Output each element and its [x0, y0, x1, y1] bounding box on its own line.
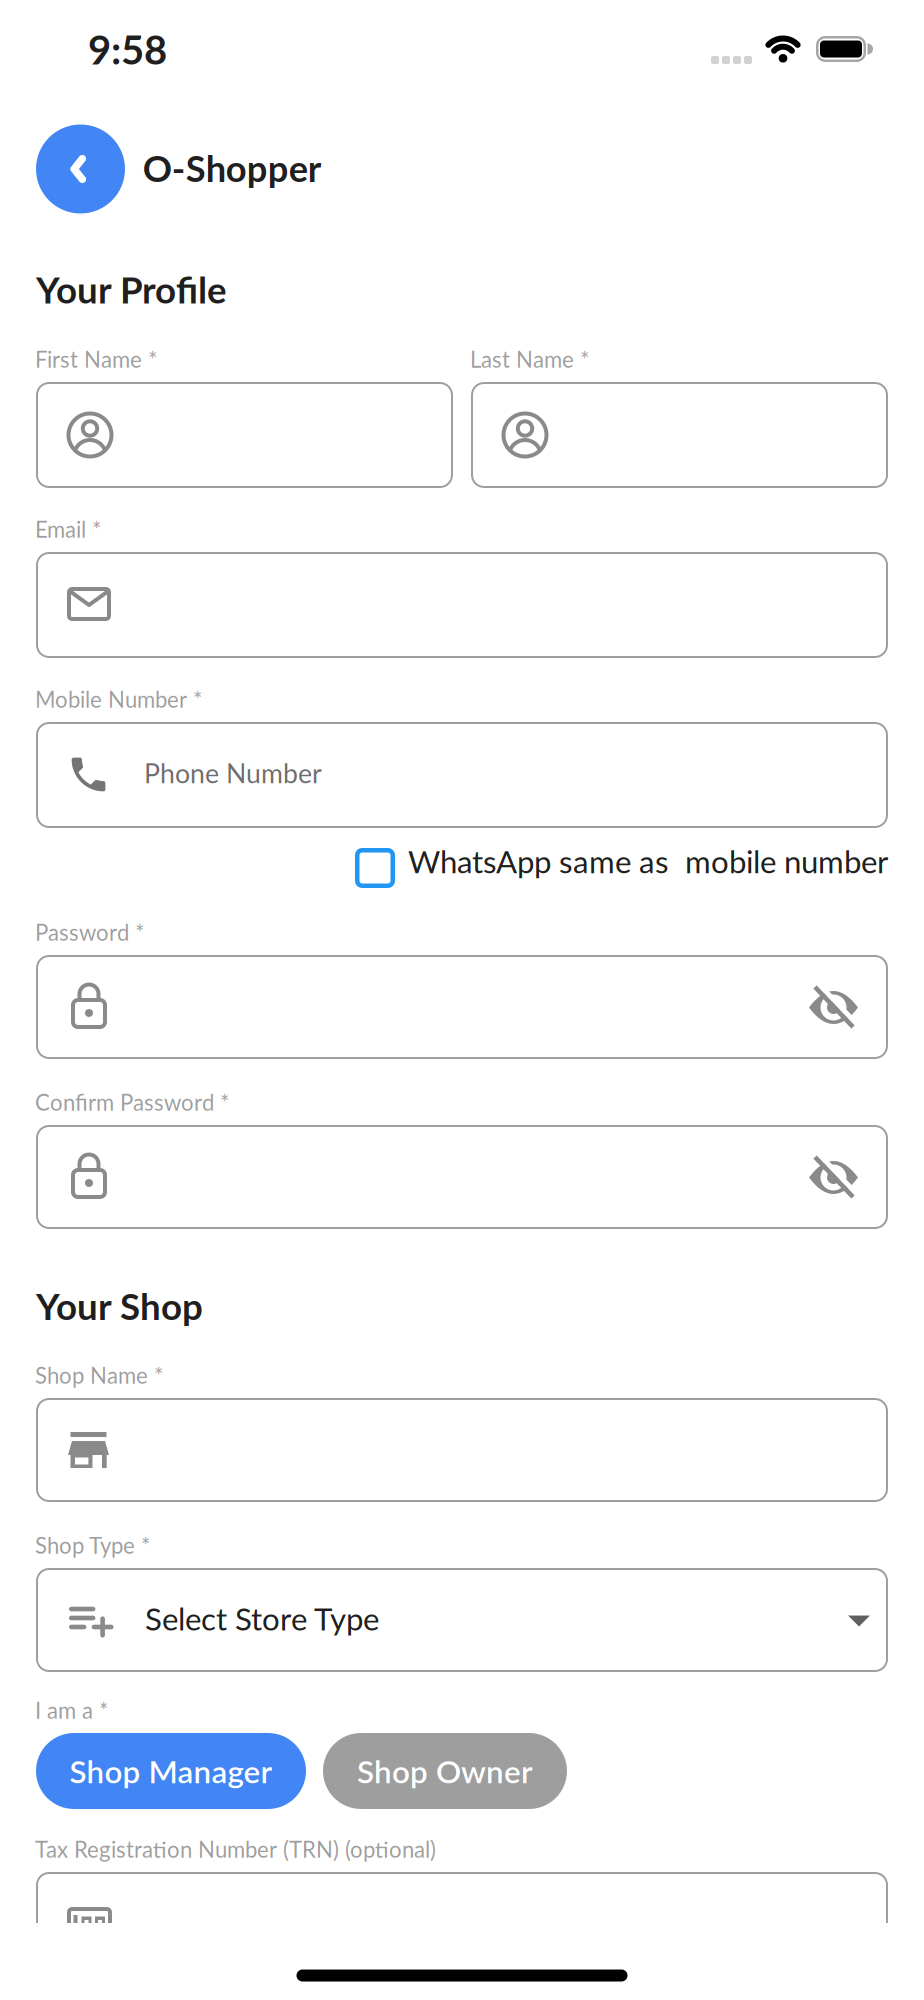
- staticText: Your Shop: [36, 1284, 203, 1328]
- button[interactable]: Show password: [809, 986, 858, 1029]
- staticText: Password *: [35, 919, 144, 945]
- staticText: Email *: [35, 516, 101, 542]
- staticText: 9:58: [88, 25, 167, 73]
- staticText: I am a *: [35, 1697, 108, 1723]
- staticText: Select Store Type: [145, 1600, 379, 1637]
- staticText: Shop Name *: [35, 1362, 163, 1388]
- staticText: WhatsApp same as mobile number: [408, 842, 888, 880]
- button[interactable]: Back: [36, 124, 125, 213]
- staticText: Last Name *: [470, 346, 589, 372]
- staticText: Shop Manager: [69, 1752, 272, 1790]
- button[interactable]: Show password: [809, 1156, 858, 1199]
- button[interactable]: Shop Owner: [323, 1733, 567, 1809]
- button[interactable]: WhatsApp same as mobile number: [355, 848, 888, 888]
- staticText: Your Profile: [36, 267, 227, 311]
- staticText: Tax Registration Number (TRN) (optional): [35, 1836, 436, 1862]
- staticText: First Name *: [35, 346, 157, 372]
- staticText: Shop Owner: [357, 1752, 533, 1790]
- button[interactable]: Shop Manager: [36, 1733, 306, 1809]
- staticText: Shop Type *: [35, 1532, 150, 1558]
- staticText: O-Shopper: [143, 146, 322, 190]
- button[interactable]: Select Store Type: [36, 1568, 888, 1672]
- staticText: Mobile Number *: [35, 686, 202, 712]
- staticText: Phone Number: [144, 757, 322, 789]
- staticText: Confirm Password *: [35, 1089, 229, 1115]
